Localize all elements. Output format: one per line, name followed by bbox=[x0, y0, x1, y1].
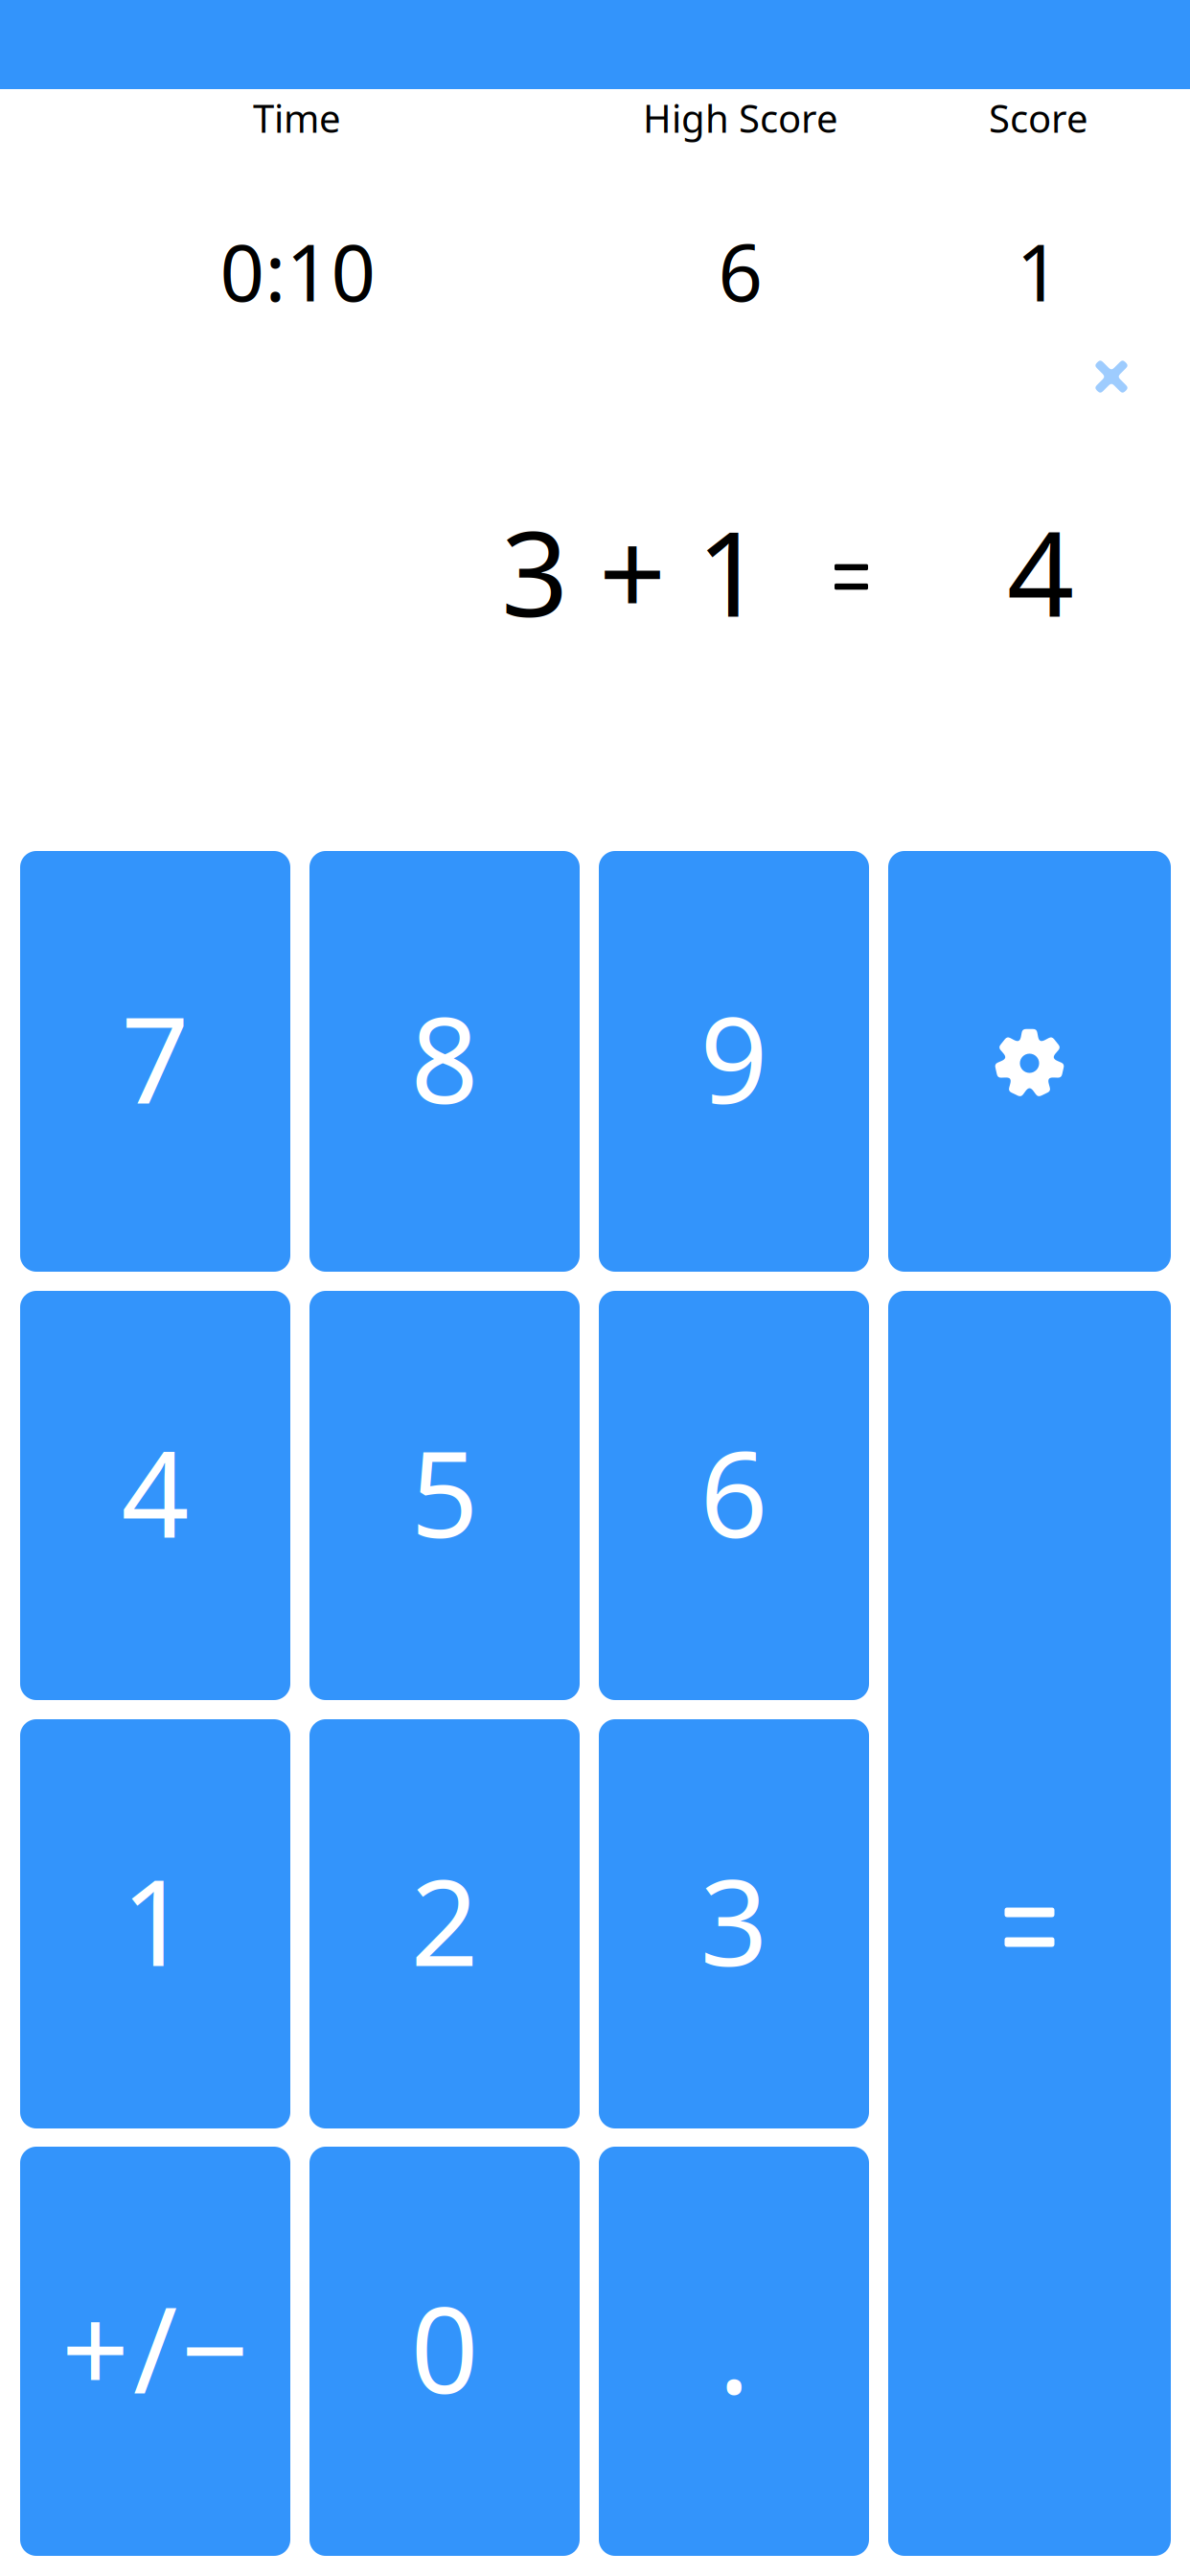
staticText: Time bbox=[253, 92, 341, 143]
staticText: 5 bbox=[411, 1413, 479, 1571]
button[interactable]: 6 bbox=[599, 1291, 869, 1700]
button[interactable]: 2 bbox=[309, 1719, 580, 2128]
staticText: 7 bbox=[121, 979, 189, 1136]
staticText: 6 bbox=[700, 1413, 768, 1571]
staticText: 3 + 1 bbox=[501, 493, 764, 649]
staticText: 3 bbox=[700, 1841, 768, 1999]
staticText: +/− bbox=[61, 2269, 249, 2426]
button[interactable]: 8 bbox=[309, 851, 580, 1272]
staticText: 4 bbox=[1007, 493, 1074, 649]
button[interactable]: . bbox=[599, 2147, 869, 2556]
button[interactable]: 4 bbox=[20, 1291, 290, 1700]
button[interactable]: Close bbox=[1067, 333, 1156, 421]
button[interactable]: 5 bbox=[309, 1291, 580, 1700]
button[interactable]: +/− bbox=[20, 2147, 290, 2556]
staticText: 4 bbox=[121, 1413, 189, 1571]
staticText: 0 bbox=[411, 2269, 479, 2426]
staticText: 8 bbox=[411, 979, 479, 1136]
staticText: 1 bbox=[1016, 219, 1061, 323]
staticText: 6 bbox=[718, 219, 763, 323]
button[interactable]: 9 bbox=[599, 851, 869, 1272]
button[interactable]: 0 bbox=[309, 2147, 580, 2556]
button[interactable]: 1 bbox=[20, 1719, 290, 2128]
staticText: 2 bbox=[411, 1841, 479, 1999]
staticText: Score bbox=[989, 92, 1088, 143]
staticText: 1 bbox=[121, 1841, 189, 1999]
button[interactable]: 3 bbox=[599, 1719, 869, 2128]
staticText: . bbox=[718, 2269, 750, 2426]
staticText: High Score bbox=[643, 92, 838, 143]
staticText: 9 bbox=[700, 979, 768, 1136]
staticText: 0:10 bbox=[220, 219, 376, 323]
button[interactable]: Settings bbox=[888, 851, 1171, 1272]
button[interactable]: 7 bbox=[20, 851, 290, 1272]
button[interactable]: Equals bbox=[888, 1291, 1171, 2556]
